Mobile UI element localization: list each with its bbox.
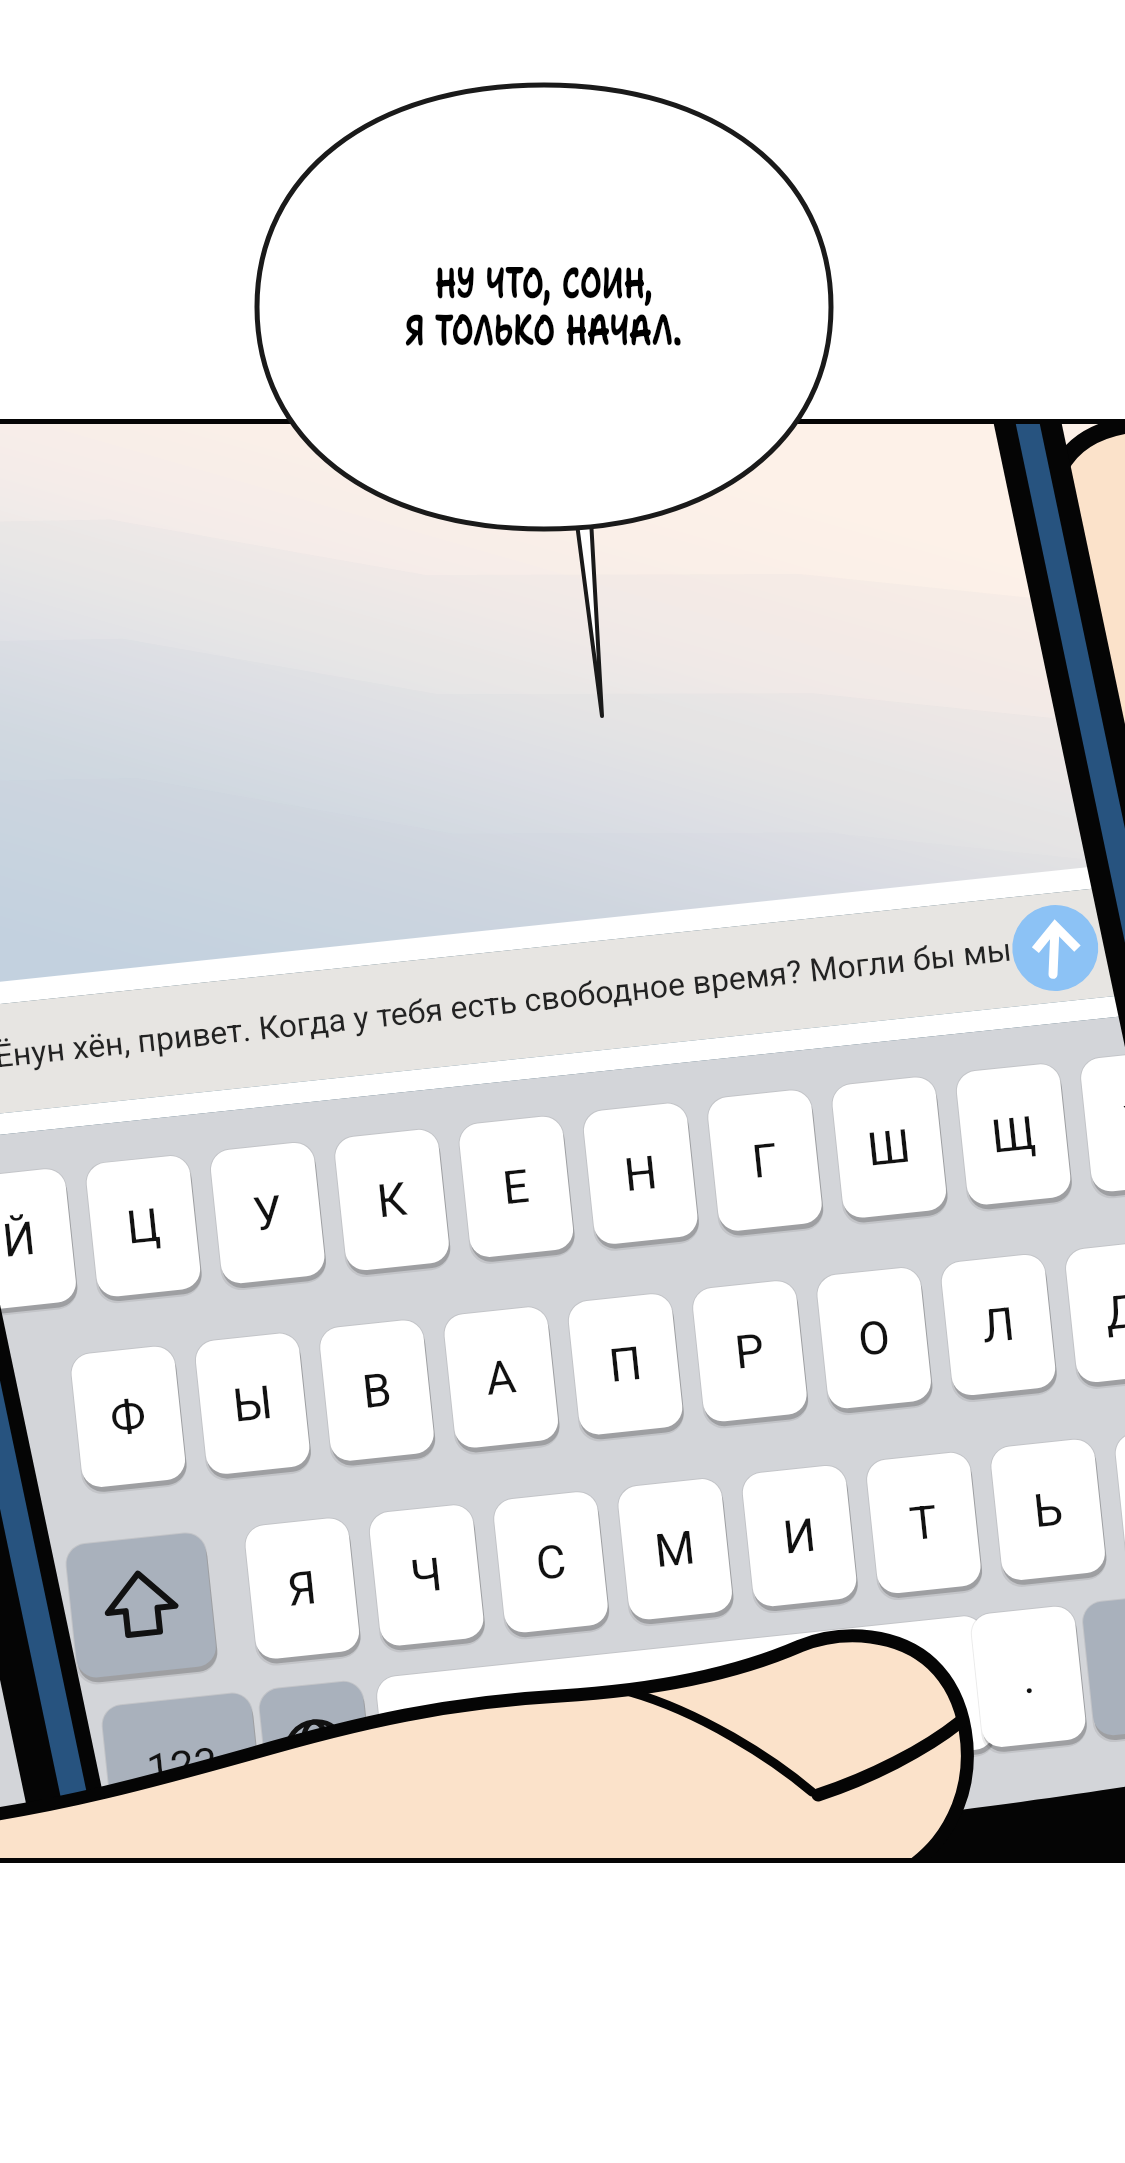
button[interactable]: Comic panel: chat screen with Russian ke…	[0, 0, 1125, 2163]
